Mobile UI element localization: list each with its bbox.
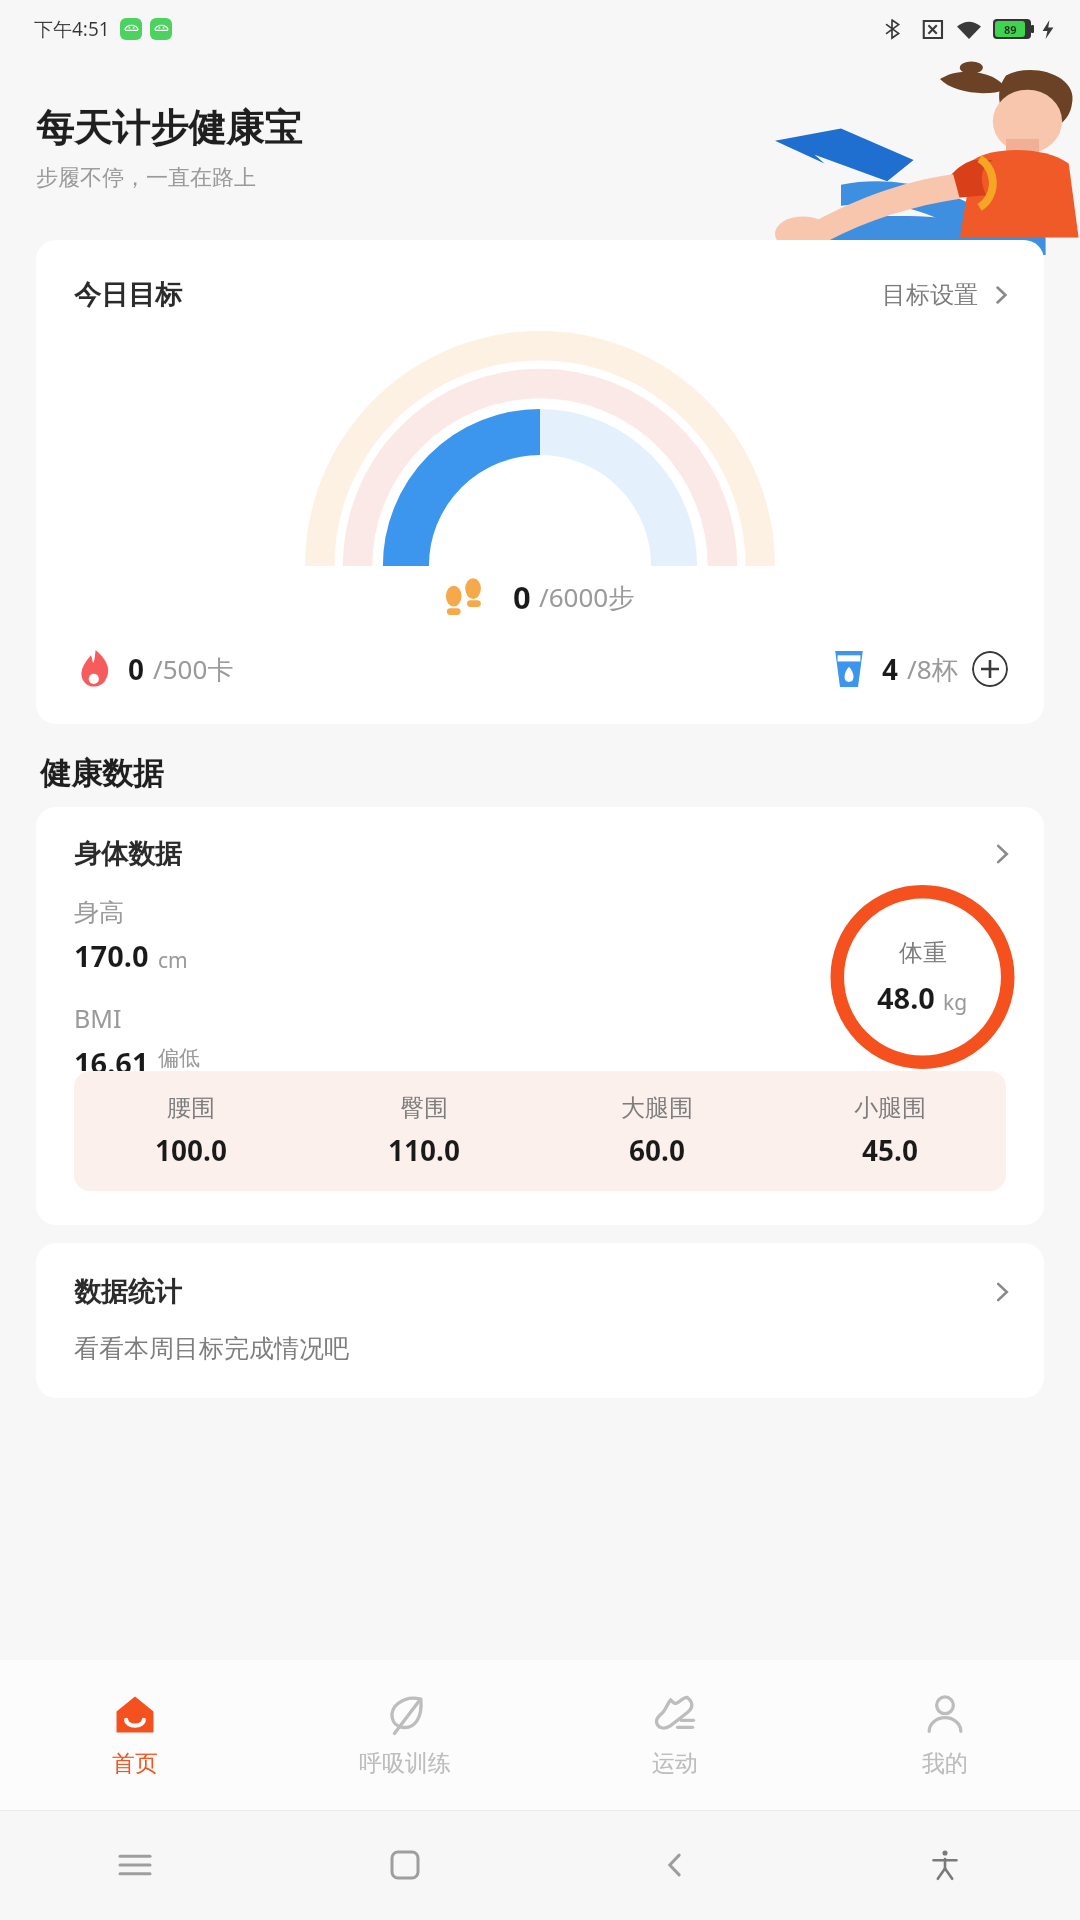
staticText: 今日目标 xyxy=(74,278,182,312)
staticText: /500卡 xyxy=(153,651,234,687)
staticText: 4 xyxy=(882,650,899,688)
staticText: 步履不停，一直在路上 xyxy=(36,164,256,192)
staticText: 健康数据 xyxy=(40,754,164,793)
staticText: 首页 xyxy=(112,1749,158,1778)
staticText: 呼吸训练 xyxy=(359,1749,451,1778)
staticText: 每天计步健康宝 xyxy=(36,104,302,152)
button[interactable]: 体重 xyxy=(815,883,1030,1071)
button[interactable]: 添加饮水 xyxy=(972,651,1008,687)
staticText: kg xyxy=(943,988,968,1017)
button[interactable]: 首页 xyxy=(0,1660,270,1810)
button[interactable]: 目标设置 xyxy=(876,274,1018,316)
staticText: 我的 xyxy=(922,1749,968,1778)
staticText: /6000步 xyxy=(539,579,635,615)
staticText: 大腿围 xyxy=(621,1093,693,1123)
button[interactable]: 呼吸训练 xyxy=(270,1660,540,1810)
staticText: 小腿围 xyxy=(854,1093,926,1123)
staticText: 身高 xyxy=(74,897,124,928)
staticText: 运动 xyxy=(652,1749,698,1778)
button[interactable]: 返回 xyxy=(648,1838,702,1892)
staticText: 体重 xyxy=(899,938,947,968)
staticText: 89 xyxy=(1004,22,1017,37)
button[interactable]: 数据统计 xyxy=(36,1243,1044,1398)
staticText: 0 xyxy=(128,650,145,688)
staticText: 170.0 xyxy=(74,936,149,975)
staticText: cm xyxy=(158,946,188,975)
staticText: 臀围 xyxy=(400,1093,448,1123)
staticText: 偏低 xyxy=(158,1045,200,1071)
staticText: 16.61 xyxy=(74,1043,149,1071)
staticText: 目标设置 xyxy=(882,280,978,310)
staticText: 0 xyxy=(513,576,531,618)
staticText: 数据统计 xyxy=(74,1275,182,1309)
staticText: 60.0 xyxy=(629,1131,685,1169)
staticText: 100.0 xyxy=(155,1131,227,1169)
staticText: 下午4:51 xyxy=(34,16,110,42)
staticText: 身体数据 xyxy=(74,837,182,871)
staticText: 45.0 xyxy=(862,1131,918,1169)
button[interactable]: 最近应用 xyxy=(108,1838,162,1892)
staticText: 腰围 xyxy=(167,1093,215,1123)
button[interactable]: 运动 xyxy=(540,1660,810,1810)
button[interactable]: 我的 xyxy=(810,1660,1080,1810)
button[interactable]: 无障碍 xyxy=(918,1838,972,1892)
staticText: 看看本周目标完成情况吧 xyxy=(74,1333,349,1364)
staticText: BMI xyxy=(74,1001,122,1035)
button[interactable]: 主屏幕 xyxy=(378,1838,432,1892)
staticText: 110.0 xyxy=(388,1131,460,1169)
staticText: 48.0 xyxy=(877,978,935,1017)
staticText: /8杯 xyxy=(907,651,958,687)
button[interactable]: 身体数据 xyxy=(36,807,1044,1225)
